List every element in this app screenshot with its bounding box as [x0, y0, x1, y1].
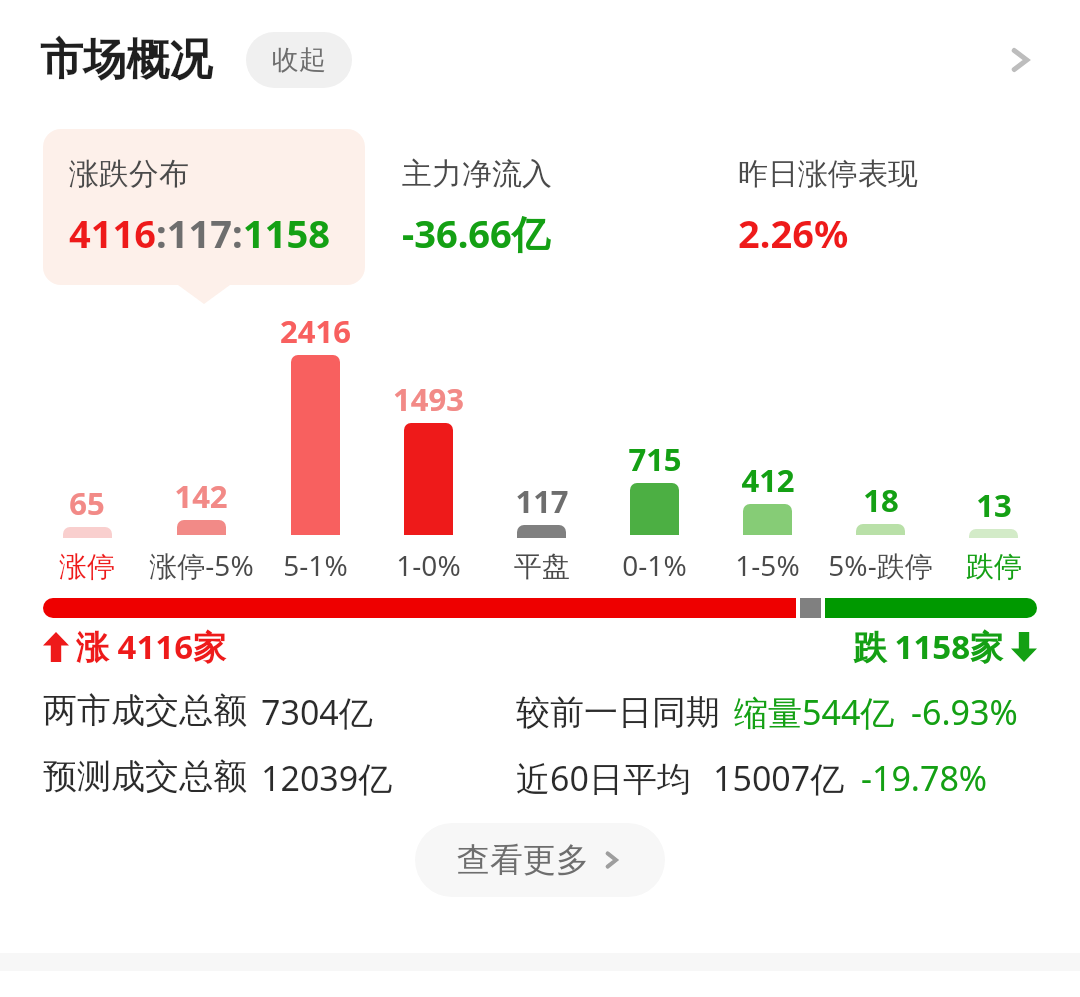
staticText: 市场概况 — [40, 33, 212, 87]
staticText: 平盘 — [514, 549, 570, 584]
staticText: 1-0% — [396, 546, 461, 584]
staticText: 预测成交总额 — [43, 755, 247, 798]
button[interactable]: 主力净流入 — [380, 129, 701, 285]
staticText: 跌 1158家 — [853, 624, 1004, 669]
staticText: 1-5% — [735, 546, 800, 584]
staticText: 142 — [174, 475, 228, 517]
staticText: 涨停 — [59, 549, 115, 584]
staticText: 7304亿 — [261, 689, 373, 735]
staticText: -19.78% — [861, 755, 988, 801]
staticText: 5%-跌停 — [828, 546, 933, 584]
staticText: 0-1% — [622, 546, 687, 584]
button[interactable]: 收起 — [246, 32, 352, 88]
button[interactable]: 65 — [30, 482, 144, 584]
staticText: 主力净流入 — [402, 155, 552, 193]
button[interactable]: 昨日涨停表现 — [716, 129, 1037, 285]
staticText: 近60日平均 — [516, 755, 691, 801]
staticText: 12039亿 — [261, 755, 393, 801]
staticText: 1158 — [243, 207, 330, 259]
staticText: 两市成交总额 — [43, 689, 247, 732]
button[interactable]: 715 — [598, 438, 711, 584]
staticText: 收起 — [272, 43, 326, 77]
button[interactable]: 142 — [144, 475, 258, 584]
button[interactable]: 18 — [824, 479, 937, 584]
staticText: 13 — [976, 484, 1012, 526]
staticText: 4116 — [69, 207, 156, 259]
button[interactable]: 查看更多 — [415, 823, 665, 897]
staticText: 65 — [69, 482, 105, 524]
button[interactable]: More — [990, 30, 1050, 90]
staticText: -36.66亿 — [402, 207, 550, 259]
button[interactable]: 412 — [711, 459, 824, 584]
staticText: -6.93% — [911, 689, 1018, 735]
staticText: 2416 — [280, 310, 351, 352]
staticText: 缩量544亿 — [734, 689, 895, 735]
staticText: 跌停 — [966, 549, 1022, 584]
staticText: 5-1% — [283, 546, 348, 584]
staticText: 较前一日同期 — [516, 691, 720, 734]
staticText: 412 — [741, 459, 795, 501]
staticText: 涨停-5% — [149, 546, 254, 584]
button[interactable]: 13 — [937, 484, 1050, 584]
staticText: 昨日涨停表现 — [738, 155, 918, 193]
staticText: 18 — [863, 479, 899, 521]
staticText: 2.26% — [738, 207, 849, 259]
staticText: :117: — [156, 207, 243, 259]
staticText: 涨 4116家 — [76, 624, 227, 669]
staticText: 15007亿 — [713, 755, 845, 801]
staticText: 1493 — [393, 378, 464, 420]
staticText: 117 — [515, 480, 569, 522]
button[interactable]: 1493 — [372, 378, 485, 584]
staticText: 涨跌分布 — [69, 155, 189, 193]
button[interactable]: 涨跌分布 — [43, 129, 365, 285]
button[interactable]: 117 — [485, 480, 598, 584]
staticText: 715 — [628, 438, 682, 480]
staticText: 查看更多 — [457, 839, 589, 881]
button[interactable]: 2416 — [258, 310, 372, 584]
